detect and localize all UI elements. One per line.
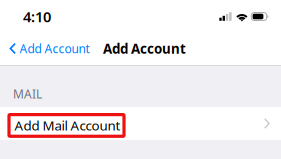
staticText: MAIL	[13, 86, 42, 102]
staticText: Add Account	[103, 40, 186, 57]
staticText: 4:10	[23, 7, 51, 26]
button[interactable]: Add Account	[0, 32, 95, 64]
button[interactable]: Add Mail Account	[0, 107, 281, 140]
staticText: Add Mail Account	[14, 117, 120, 134]
staticText: Add Account	[19, 40, 89, 56]
